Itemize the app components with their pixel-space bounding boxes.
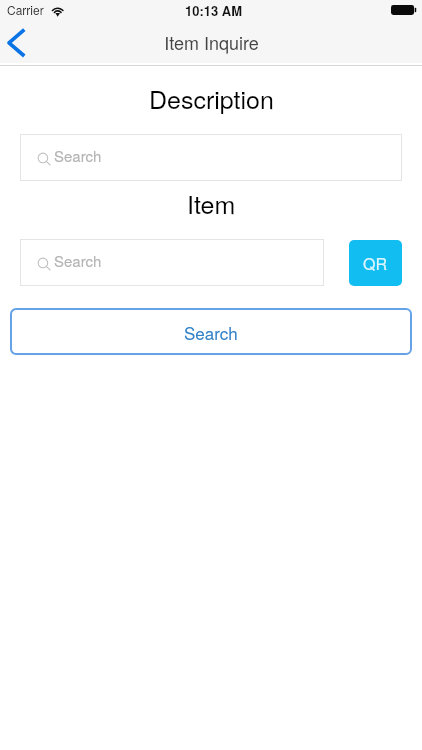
staticText: QR [363, 252, 388, 275]
staticText: Description [149, 80, 274, 116]
staticText: Search [54, 145, 102, 166]
button[interactable]: Search [10, 308, 412, 355]
button[interactable]: Search [20, 239, 324, 286]
staticText: Item Inquire [164, 29, 259, 55]
staticText: Item [187, 185, 236, 221]
staticText: Search [54, 250, 102, 271]
staticText: Search [184, 320, 238, 344]
button[interactable]: Search [20, 134, 402, 181]
button[interactable]: Back [0, 21, 34, 63]
staticText: Carrier [7, 1, 44, 18]
button[interactable]: QR [349, 240, 402, 286]
staticText: 10:13 AM [185, 1, 243, 20]
